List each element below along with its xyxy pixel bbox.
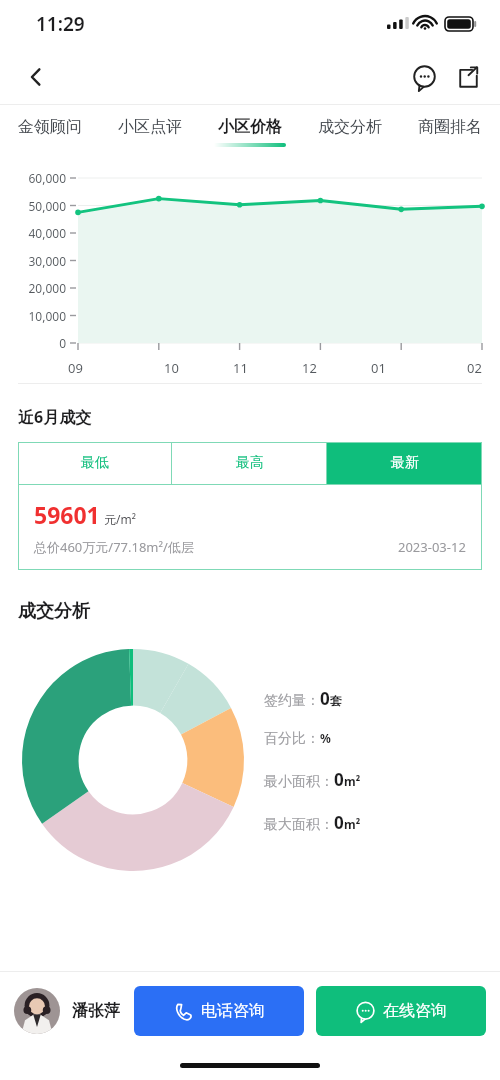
staticText: 11:29 bbox=[36, 11, 85, 37]
staticText: m² bbox=[344, 816, 361, 832]
staticText: % bbox=[320, 730, 331, 746]
button[interactable]: 小区价格 bbox=[200, 105, 300, 158]
staticText: 潘张萍 bbox=[72, 1001, 120, 1021]
button[interactable]: Back bbox=[14, 55, 58, 99]
staticText: 09 bbox=[68, 359, 83, 377]
staticText: 12 bbox=[302, 359, 317, 377]
staticText: m² bbox=[344, 773, 361, 789]
staticText: 最新 bbox=[391, 454, 419, 472]
staticText: 签约量： bbox=[264, 692, 320, 710]
staticText: 最大面积： bbox=[264, 816, 334, 834]
staticText: 近6月成交 bbox=[18, 406, 92, 428]
staticText: 商圈排名 bbox=[418, 117, 482, 137]
staticText: 百分比： bbox=[264, 730, 320, 748]
staticText: 30,000 bbox=[10, 253, 66, 269]
staticText: 0 bbox=[334, 768, 344, 791]
staticText: 50,000 bbox=[10, 198, 66, 214]
staticText: 10 bbox=[164, 359, 179, 377]
staticText: 10,000 bbox=[10, 308, 66, 324]
staticText: 40,000 bbox=[10, 225, 66, 241]
staticText: 小区点评 bbox=[118, 117, 182, 137]
staticText: 59601 bbox=[34, 499, 100, 530]
button[interactable]: 电话咨询 bbox=[134, 986, 304, 1036]
staticText: 套 bbox=[330, 693, 342, 708]
staticText: 成交分析 bbox=[18, 600, 90, 623]
staticText: 小区价格 bbox=[218, 117, 282, 137]
staticText: 元/m² bbox=[104, 511, 136, 527]
button[interactable]: 最高 bbox=[172, 442, 327, 484]
staticText: 金领顾问 bbox=[18, 117, 82, 137]
staticText: 在线咨询 bbox=[383, 1001, 447, 1021]
button[interactable]: 潘张萍 bbox=[14, 988, 120, 1034]
staticText: 60,000 bbox=[10, 170, 66, 186]
staticText: 电话咨询 bbox=[201, 1001, 265, 1021]
button[interactable]: 商圈排名 bbox=[400, 105, 500, 158]
staticText: 最小面积： bbox=[264, 773, 334, 791]
staticText: 最低 bbox=[81, 454, 109, 472]
staticText: 02 bbox=[467, 359, 482, 377]
staticText: 0 bbox=[334, 811, 344, 834]
staticText: 0 bbox=[10, 335, 66, 351]
button[interactable]: Share bbox=[446, 55, 490, 99]
staticText: 总价460万元/77.18m²/低层 bbox=[34, 538, 194, 556]
staticText: 01 bbox=[371, 359, 386, 377]
staticText: 成交分析 bbox=[318, 117, 382, 137]
button[interactable]: 最低 bbox=[18, 442, 172, 484]
staticText: 0 bbox=[320, 687, 330, 710]
staticText: 最高 bbox=[236, 454, 264, 472]
button[interactable]: 金领顾问 bbox=[0, 105, 100, 158]
button[interactable]: Messages bbox=[402, 55, 446, 99]
button[interactable]: 小区点评 bbox=[100, 105, 200, 158]
button[interactable]: 在线咨询 bbox=[316, 986, 486, 1036]
button[interactable]: 最新 bbox=[327, 442, 482, 484]
button[interactable]: 成交分析 bbox=[300, 105, 400, 158]
staticText: 20,000 bbox=[10, 280, 66, 296]
staticText: 2023-03-12 bbox=[398, 538, 466, 556]
staticText: 11 bbox=[233, 359, 248, 377]
